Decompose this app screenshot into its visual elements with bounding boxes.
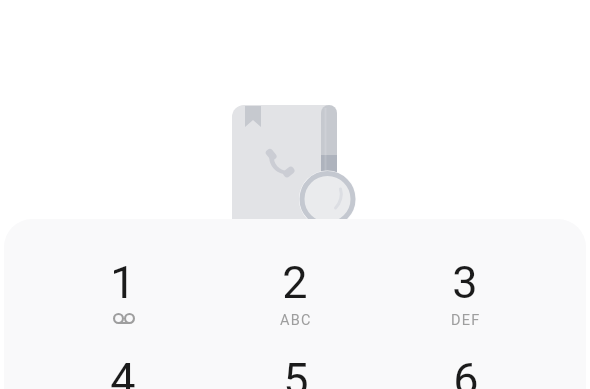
staticText: 6 bbox=[453, 353, 479, 389]
button[interactable]: 2 bbox=[238, 256, 352, 348]
staticText: 3 bbox=[452, 256, 478, 309]
button[interactable]: 5 bbox=[238, 353, 352, 389]
other: Voicemail bbox=[113, 313, 135, 324]
staticText: ABC bbox=[280, 312, 312, 329]
button[interactable]: 3 bbox=[408, 256, 522, 348]
staticText: 2 bbox=[282, 256, 308, 309]
button[interactable]: 6 bbox=[408, 353, 522, 389]
button[interactable]: 4 bbox=[66, 353, 180, 389]
button[interactable]: 1 bbox=[66, 256, 180, 348]
staticText: 5 bbox=[283, 353, 309, 389]
staticText: DEF bbox=[451, 312, 481, 329]
staticText: 4 bbox=[110, 353, 136, 389]
staticText: 1 bbox=[110, 256, 136, 309]
